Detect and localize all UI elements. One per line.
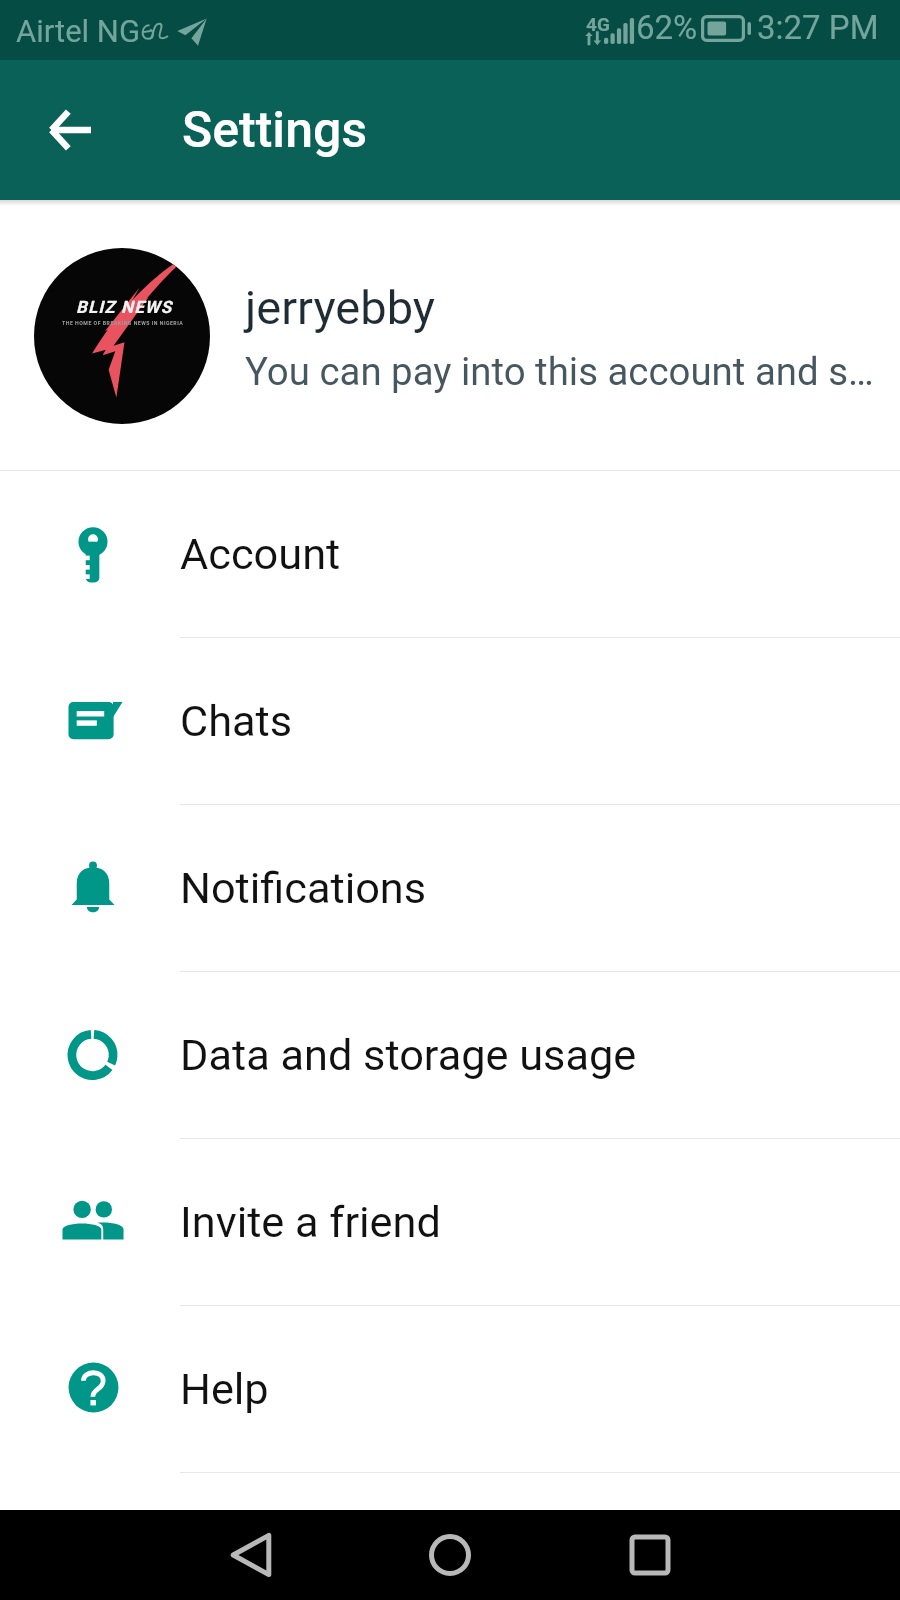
staticText: Account [180,529,341,580]
staticText: Notifications [180,863,427,914]
button[interactable]: Invite a friend [0,1139,900,1305]
staticText: 4G [586,13,610,35]
staticText: Invite a friend [180,1197,441,1248]
staticText: 3:27 PM [757,8,879,47]
button[interactable]: Data and storage usage [0,972,900,1138]
button[interactable]: Notifications [0,805,900,971]
staticText: 62% [636,8,698,47]
staticText: jerryebby [245,280,436,335]
staticText: BLIZ NEWS [76,297,173,317]
button[interactable]: Recents [600,1510,700,1600]
staticText: Help [180,1364,269,1415]
button[interactable]: Back [200,1510,300,1600]
staticText: Airtel NG [16,13,141,49]
staticText: Data and storage usage [180,1030,637,1081]
button[interactable]: Back [18,78,122,182]
staticText: Chats [180,696,293,747]
staticText: Settings [182,101,368,160]
button[interactable]: Help [0,1306,900,1472]
staticText: THE HOME OF BREAKING NEWS IN NIGERIA [62,320,184,326]
button[interactable]: BLIZ NEWS [0,206,900,470]
button[interactable]: Home [400,1510,500,1600]
button[interactable]: Chats [0,638,900,804]
staticText: You can pay into this account and s… [245,349,874,394]
button[interactable]: Account [0,471,900,637]
